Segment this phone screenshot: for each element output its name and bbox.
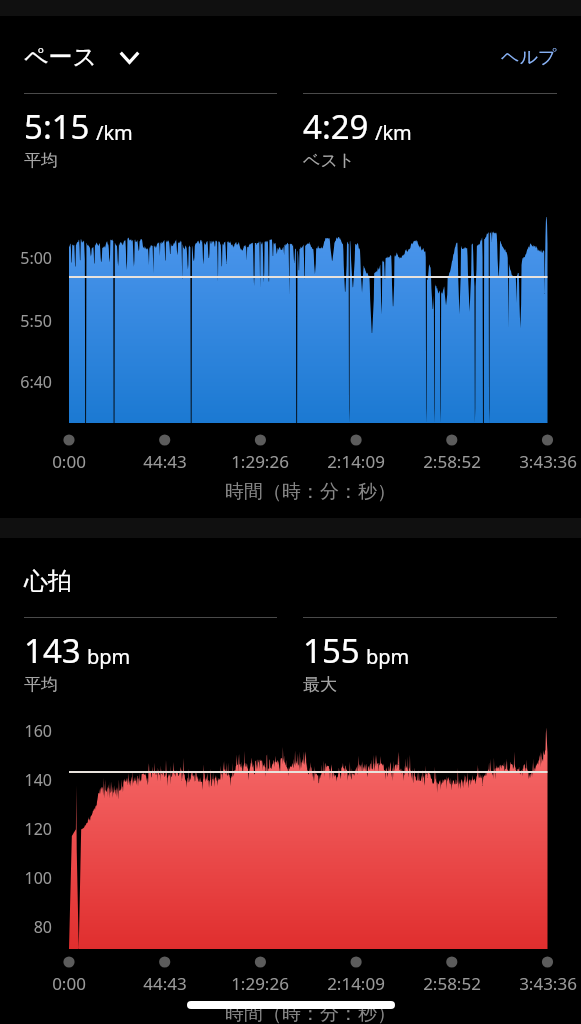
staticText: 44:43 <box>105 450 225 473</box>
staticText: 5:00 <box>0 247 52 269</box>
staticText: 2:58:52 <box>392 450 512 473</box>
staticText: 5:50 <box>0 310 52 332</box>
staticText: 2:14:09 <box>296 450 416 473</box>
staticText: 120 <box>0 818 52 840</box>
staticText: 80 <box>0 916 52 938</box>
staticText: 160 <box>0 720 52 742</box>
staticText: 155 <box>303 628 360 673</box>
staticText: 1:29:26 <box>200 450 320 473</box>
staticText: 1:29:26 <box>200 972 320 995</box>
staticText: 3:43:36 <box>488 450 581 473</box>
staticText: 2:14:09 <box>296 972 416 995</box>
staticText: bpm <box>87 643 131 670</box>
staticText: 時間（時：分：秒） <box>34 1002 581 1024</box>
staticText: 2:58:52 <box>392 972 512 995</box>
staticText: 6:40 <box>0 371 52 393</box>
staticText: 最大 <box>303 674 337 695</box>
staticText: ベスト <box>303 150 356 171</box>
staticText: ヘルプ <box>501 46 557 69</box>
staticText: 心拍 <box>24 566 72 596</box>
staticText: 3:43:36 <box>488 972 581 995</box>
staticText: 平均 <box>24 674 58 695</box>
button[interactable]: Pace metric selector <box>24 42 140 72</box>
staticText: 5:15 <box>24 104 90 149</box>
staticText: /km <box>375 119 412 146</box>
staticText: 100 <box>0 867 52 889</box>
staticText: 4:29 <box>303 104 369 149</box>
staticText: 0:00 <box>9 450 129 473</box>
staticText: /km <box>96 119 133 146</box>
staticText: 143 <box>24 628 81 673</box>
staticText: 平均 <box>24 150 58 171</box>
staticText: 時間（時：分：秒） <box>34 480 581 504</box>
staticText: ペース <box>24 42 98 72</box>
button[interactable]: ヘルプ <box>501 46 557 69</box>
staticText: 140 <box>0 769 52 791</box>
staticText: 44:43 <box>105 972 225 995</box>
staticText: bpm <box>366 643 410 670</box>
staticText: 0:00 <box>9 972 129 995</box>
